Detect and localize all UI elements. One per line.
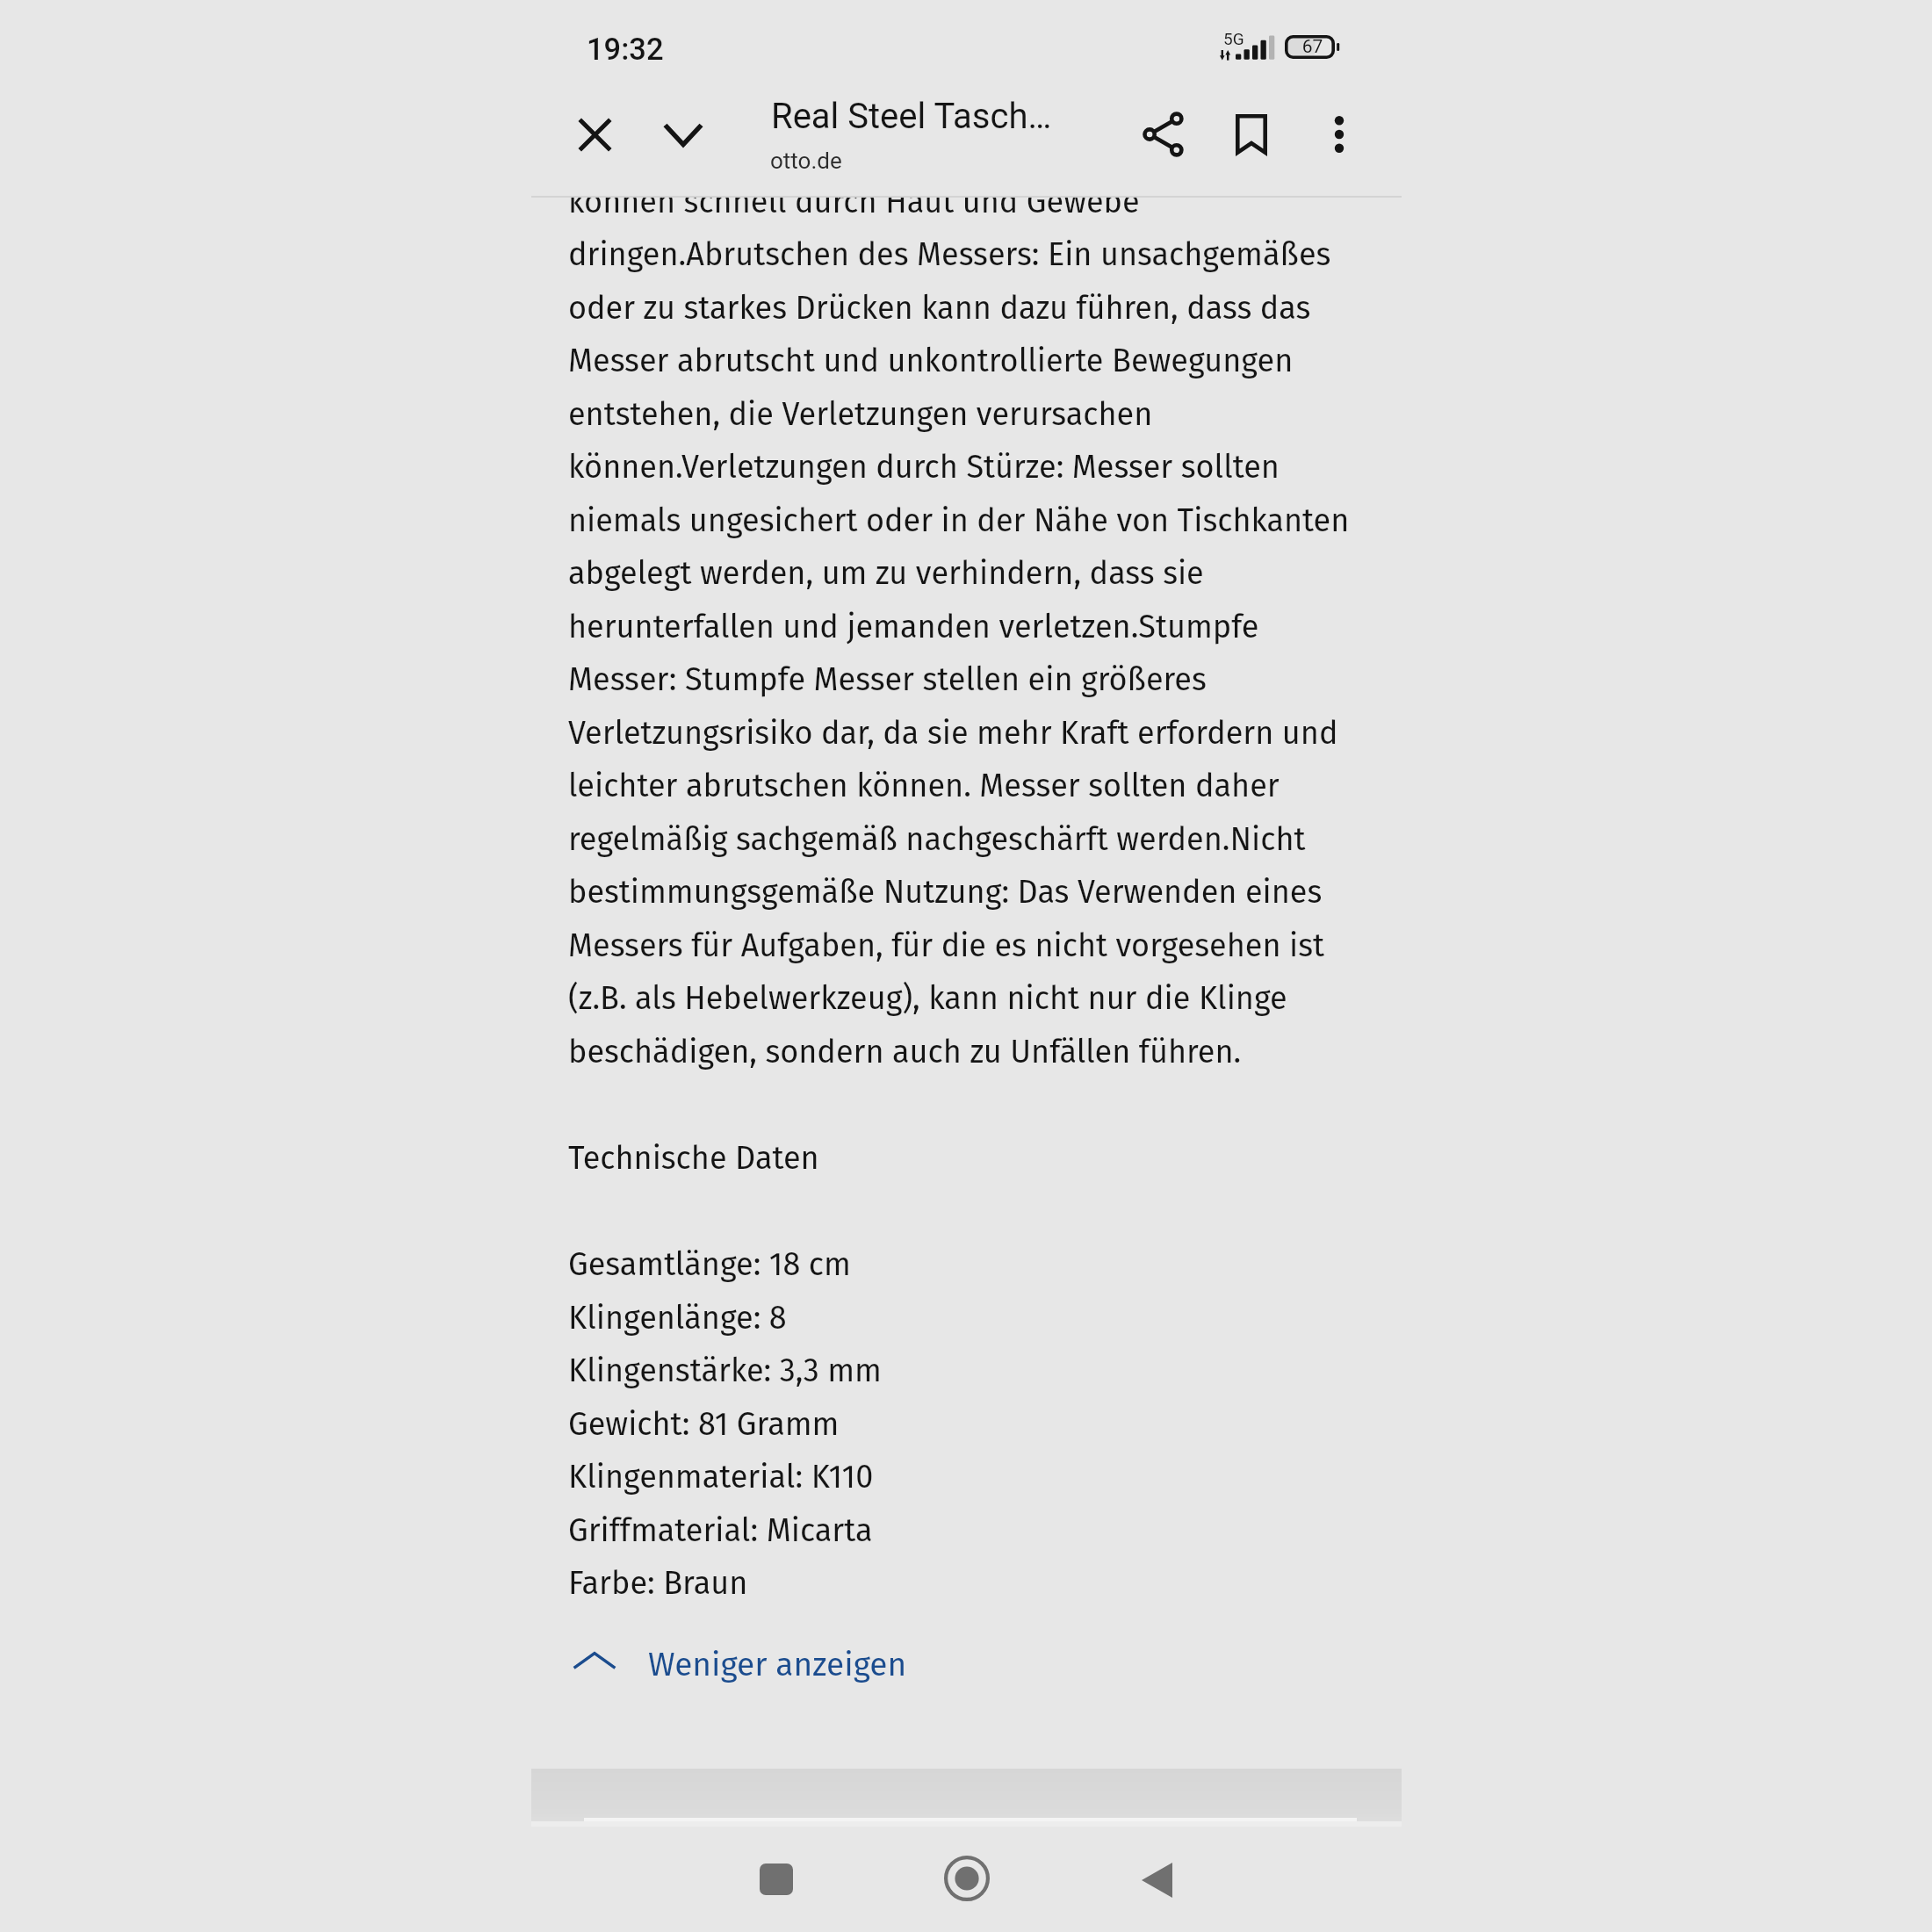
- staticText: Real Steel Tasch…: [771, 96, 1052, 137]
- staticText: Weniger anzeigen: [648, 1645, 907, 1683]
- staticText: bestimmungsgemäße Nutzung: Das Verwenden…: [568, 873, 1323, 911]
- staticText: oder zu starkes Drücken kann dazu führen…: [568, 289, 1311, 327]
- staticText: Messer abrutscht und unkontrollierte Bew…: [568, 342, 1294, 379]
- staticText: abgelegt werden, um zu verhindern, dass …: [568, 554, 1204, 592]
- button[interactable]: More options: [1301, 96, 1378, 173]
- staticText: leichter abrutschen können. Messer sollt…: [568, 767, 1280, 804]
- staticText: können schnell durch Haut und Gewebe: [568, 183, 1140, 220]
- staticText: 5G: [1223, 29, 1244, 48]
- staticText: Farbe: Braun: [568, 1564, 748, 1602]
- staticText: Technische Daten: [568, 1139, 819, 1177]
- staticText: herunterfallen und jemanden verletzen.St…: [568, 608, 1259, 645]
- staticText: (z.B. als Hebelwerkzeug), kann nicht nur…: [568, 979, 1287, 1017]
- button[interactable]: Recent apps: [724, 1827, 829, 1932]
- staticText: 19:32: [587, 32, 664, 67]
- staticText: Verletzungsrisiko dar, da sie mehr Kraft…: [568, 714, 1338, 752]
- staticText: beschädigen, sondern auch zu Unfällen fü…: [568, 1033, 1242, 1071]
- staticText: Klingenstärke: 3,3 mm: [568, 1352, 882, 1389]
- button[interactable]: Close: [556, 96, 633, 173]
- button[interactable]: Back: [1104, 1827, 1209, 1932]
- staticText: Messer: Stumpfe Messer stellen ein größe…: [568, 660, 1207, 698]
- staticText: niemals ungesichert oder in der Nähe von…: [568, 501, 1350, 539]
- staticText: regelmäßig sachgemäß nachgeschärft werde…: [568, 820, 1306, 858]
- staticText: Griffmaterial: Micarta: [568, 1511, 873, 1549]
- staticText: 67: [1287, 36, 1337, 60]
- button[interactable]: Weniger anzeigen: [559, 1635, 919, 1700]
- staticText: otto.de: [770, 148, 842, 174]
- staticText: Klingenmaterial: K110: [568, 1458, 874, 1496]
- button[interactable]: Bookmark: [1213, 96, 1290, 173]
- staticText: dringen.Abrutschen des Messers: Ein unsa…: [568, 235, 1331, 273]
- staticText: Klingenlänge: 8: [568, 1299, 787, 1337]
- staticText: können.Verletzungen durch Stürze: Messer…: [568, 448, 1280, 486]
- button[interactable]: Collapse: [645, 96, 722, 173]
- button[interactable]: Share: [1124, 96, 1201, 173]
- staticText: entstehen, die Verletzungen verursachen: [568, 395, 1153, 433]
- staticText: Messers für Aufgaben, für die es nicht v…: [568, 926, 1325, 964]
- staticText: Gesamtlänge: 18 cm: [568, 1245, 851, 1283]
- staticText: Gewicht: 81 Gramm: [568, 1405, 840, 1443]
- button[interactable]: Home: [914, 1826, 1020, 1931]
